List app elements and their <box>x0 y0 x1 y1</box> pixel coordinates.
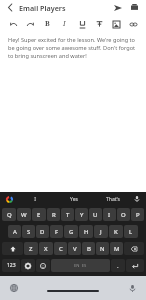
button[interactable]: I <box>103 208 116 221</box>
staticText: V <box>73 245 77 253</box>
button[interactable]: I <box>58 18 70 30</box>
button[interactable]: Google <box>4 194 14 204</box>
staticText: W <box>21 211 27 219</box>
staticText: A <box>13 228 17 236</box>
button[interactable]: M <box>110 242 123 255</box>
button[interactable]: T <box>61 208 74 221</box>
staticText: That's <box>106 196 120 203</box>
staticText: Hey! Super excited for the lesson. We're… <box>8 36 138 60</box>
staticText: R <box>52 211 56 219</box>
staticText: D <box>40 228 45 236</box>
button[interactable]: Backspace <box>124 242 144 255</box>
button[interactable]: Language <box>8 282 20 294</box>
button[interactable]: Text color <box>93 18 105 30</box>
staticText: U <box>93 211 98 219</box>
staticText: O <box>121 211 126 219</box>
staticText: L <box>129 228 133 236</box>
button[interactable]: R <box>47 208 60 221</box>
button[interactable]: P <box>131 208 144 221</box>
staticText: . <box>117 262 119 270</box>
button[interactable]: S <box>22 225 35 238</box>
staticText: F <box>55 228 59 236</box>
button[interactable]: V <box>68 242 81 255</box>
staticText: 123 <box>7 262 16 269</box>
button[interactable]: Y <box>75 208 88 221</box>
staticText: S <box>27 228 31 236</box>
button[interactable]: Send <box>111 1 124 14</box>
button[interactable]: Undo <box>7 18 19 30</box>
staticText: N <box>100 245 105 253</box>
button[interactable]: B <box>82 242 95 255</box>
button[interactable]: K <box>109 225 123 238</box>
button[interactable]: H <box>79 225 93 238</box>
button[interactable]: Shift <box>2 242 23 255</box>
button[interactable]: E <box>32 208 46 221</box>
button[interactable]: L <box>124 225 138 238</box>
staticText: T <box>66 211 70 219</box>
button[interactable]: Insert image <box>110 18 122 30</box>
button[interactable]: That's <box>93 192 132 206</box>
button[interactable]: Yes <box>54 192 93 206</box>
button[interactable]: U <box>89 208 102 221</box>
button[interactable]: G <box>64 225 78 238</box>
button[interactable]: Settings <box>21 259 35 272</box>
staticText: Yes <box>70 196 78 203</box>
button[interactable]: X <box>39 242 53 255</box>
button[interactable]: J <box>94 225 108 238</box>
staticText: J <box>100 228 102 236</box>
button[interactable]: B <box>41 18 53 30</box>
staticText: EN ES <box>74 263 87 269</box>
button[interactable]: Z <box>24 242 38 255</box>
button[interactable]: C <box>54 242 67 255</box>
staticText: B <box>87 245 91 253</box>
button[interactable]: Enter <box>126 259 144 272</box>
button[interactable]: Q <box>2 208 16 221</box>
staticText: X <box>44 245 48 253</box>
button[interactable]: 123 <box>2 259 20 272</box>
button[interactable]: Underline <box>76 18 88 30</box>
button[interactable]: I <box>16 192 54 206</box>
staticText: I <box>34 196 36 203</box>
button[interactable]: A <box>8 225 21 238</box>
button[interactable]: O <box>117 208 130 221</box>
staticText: E <box>37 211 41 219</box>
staticText: I <box>63 19 66 29</box>
staticText: P <box>136 211 140 219</box>
staticText: Q <box>7 211 12 219</box>
staticText: Y <box>80 211 84 219</box>
button[interactable]: Voice input <box>132 194 142 204</box>
button[interactable]: F <box>50 225 63 238</box>
button[interactable]: Emoji <box>36 259 50 272</box>
staticText: B <box>45 19 50 29</box>
staticText: M <box>114 245 120 253</box>
staticText: C <box>59 245 63 253</box>
button[interactable]: Microphone <box>126 282 138 294</box>
staticText: Z <box>29 245 33 253</box>
button[interactable]: Insert link <box>127 18 139 30</box>
staticText: K <box>114 228 118 236</box>
button[interactable]: Back <box>5 2 16 13</box>
staticText: G <box>69 228 74 236</box>
staticText: I <box>108 211 111 219</box>
button[interactable]: N <box>96 242 109 255</box>
button[interactable]: Attach <box>128 1 141 14</box>
button[interactable]: Period <box>111 259 125 272</box>
button[interactable]: Redo <box>24 18 36 30</box>
staticText: H <box>84 228 89 236</box>
staticText: Email Players <box>19 3 66 13</box>
button[interactable]: D <box>36 225 49 238</box>
button[interactable]: W <box>17 208 31 221</box>
button[interactable]: EN ES <box>51 259 110 272</box>
